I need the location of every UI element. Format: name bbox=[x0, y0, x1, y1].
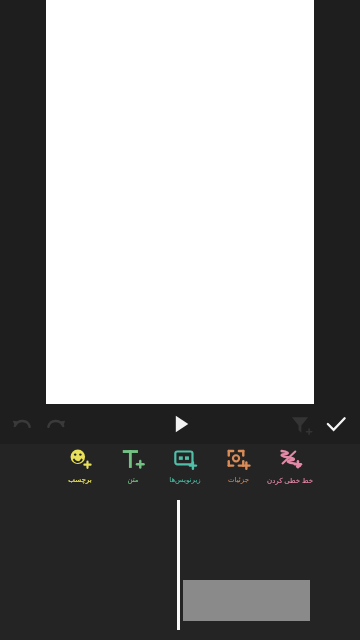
staticText: خط خطی کردن bbox=[267, 476, 313, 486]
button[interactable]: Undo bbox=[10, 412, 34, 436]
button[interactable]: Play bbox=[168, 411, 194, 437]
button[interactable]: Filters bbox=[288, 412, 312, 436]
staticText: متن bbox=[127, 476, 139, 484]
button[interactable]: خط خطی کردن bbox=[266, 444, 314, 486]
button[interactable]: زیرنویس‌ها bbox=[161, 444, 209, 484]
staticText: زیرنویس‌ها bbox=[169, 476, 201, 484]
button[interactable]: Done bbox=[324, 412, 348, 436]
button[interactable]: جزئیات bbox=[214, 444, 262, 484]
staticText: جزئیات bbox=[228, 476, 249, 484]
button[interactable]: برچسب bbox=[56, 444, 104, 484]
button[interactable]: Redo bbox=[44, 412, 68, 436]
button[interactable]: متن bbox=[109, 444, 157, 484]
staticText: برچسب bbox=[68, 476, 92, 484]
